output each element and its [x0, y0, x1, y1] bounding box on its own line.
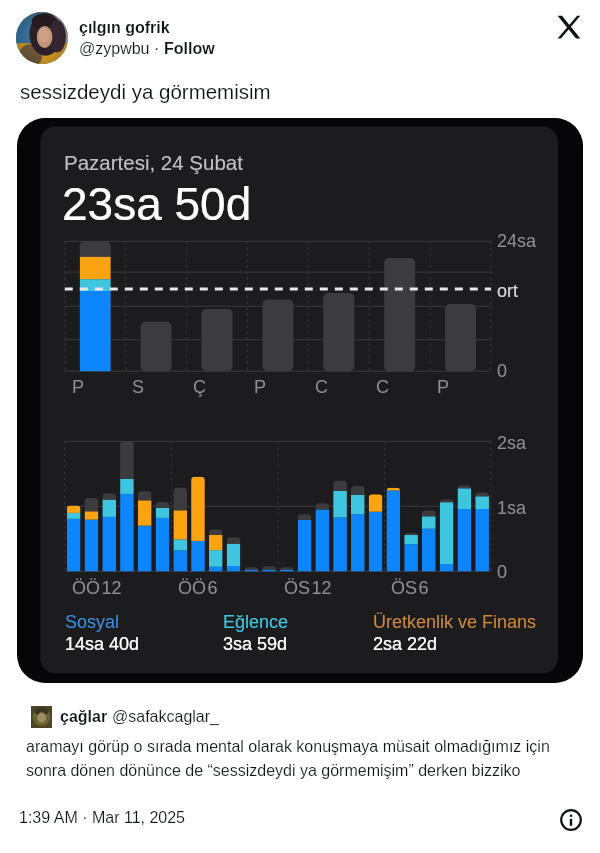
staticText: P	[437, 377, 450, 397]
button[interactable]: @safakcaglar_	[112, 708, 219, 726]
staticText: Eğlence	[223, 612, 289, 632]
staticText: aramayı görüp o sırada mental olarak kon…	[26, 738, 550, 780]
staticText: 24sa	[497, 231, 537, 251]
staticText: ort	[497, 281, 519, 301]
staticText: 14sa 40d	[65, 634, 140, 654]
button[interactable]: Eğlence	[223, 612, 289, 654]
staticText: P	[72, 377, 85, 397]
staticText: @zypwbu ·	[79, 40, 164, 58]
staticText: ÖS 12	[284, 578, 332, 598]
staticText: Pazartesi, 24 Şubat	[64, 151, 243, 174]
staticText: P	[254, 377, 267, 397]
button[interactable]: Profile photo	[16, 12, 68, 64]
staticText: 2sa 22d	[373, 634, 438, 654]
staticText: sessizdeydi ya görmemisim	[20, 80, 271, 103]
staticText: 0	[497, 361, 508, 381]
button[interactable]: X logo	[556, 14, 582, 40]
staticText: C	[376, 377, 389, 397]
staticText: 2sa	[497, 433, 527, 453]
staticText: C	[315, 377, 328, 397]
button[interactable]: Follow	[164, 40, 215, 58]
staticText: 0	[497, 562, 508, 582]
staticText: Üretkenlik ve Finans	[373, 612, 537, 632]
staticText: ÖÖ 6	[178, 578, 218, 598]
staticText: 1:39 AM · Mar 11, 2025	[19, 809, 186, 827]
staticText: Sosyal	[65, 612, 120, 632]
staticText: 23sa 50d	[62, 178, 252, 229]
button[interactable]: çılgın gofrik	[79, 19, 170, 37]
staticText: ÖS 6	[391, 578, 429, 598]
staticText: S	[132, 377, 145, 397]
staticText: 3sa 59d	[223, 634, 288, 654]
button[interactable]: Üretkenlik ve Finans	[373, 612, 537, 654]
button[interactable]: çağlar	[60, 708, 112, 726]
button[interactable]: Profile photo	[31, 706, 52, 728]
button[interactable]: Sosyal	[65, 612, 140, 654]
staticText: 1sa	[497, 498, 527, 518]
staticText: ÖÖ 12	[72, 578, 122, 598]
staticText: Ç	[193, 377, 206, 397]
button[interactable]: More info	[560, 809, 582, 831]
